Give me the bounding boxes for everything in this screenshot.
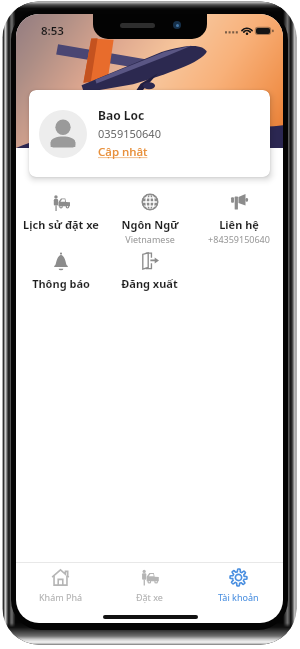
staticText: 0359150640 bbox=[98, 126, 161, 141]
staticText: Đặt xe bbox=[136, 591, 163, 603]
staticText: Ngôn Ngữ bbox=[121, 217, 179, 232]
staticText: Khám Phá bbox=[39, 591, 82, 603]
button[interactable]: Thông báo bbox=[16, 248, 105, 300]
staticText: 8:53 bbox=[41, 23, 64, 39]
button[interactable]: Account bbox=[194, 563, 283, 607]
button[interactable]: Liên hệ bbox=[194, 189, 283, 245]
staticText: Bao Loc bbox=[98, 107, 145, 123]
staticText: Cập nhật bbox=[98, 144, 148, 160]
button[interactable]: Bao Loc bbox=[29, 90, 270, 177]
staticText: Lịch sử đặt xe bbox=[23, 217, 99, 232]
button[interactable]: Explore bbox=[16, 563, 105, 607]
staticText: Đăng xuất bbox=[121, 276, 178, 291]
staticText: +84359150640 bbox=[208, 233, 270, 245]
staticText: Thông báo bbox=[32, 276, 90, 291]
staticText: Vietnamese bbox=[125, 233, 175, 245]
button[interactable]: Book a ride bbox=[105, 563, 194, 607]
button[interactable]: Đăng xuất bbox=[105, 248, 194, 300]
staticText: Liên hệ bbox=[219, 217, 259, 232]
button[interactable]: Lịch sử đặt xe bbox=[16, 189, 105, 245]
button[interactable]: Ngôn Ngữ bbox=[105, 189, 194, 245]
staticText: Tài khoản bbox=[218, 591, 259, 603]
